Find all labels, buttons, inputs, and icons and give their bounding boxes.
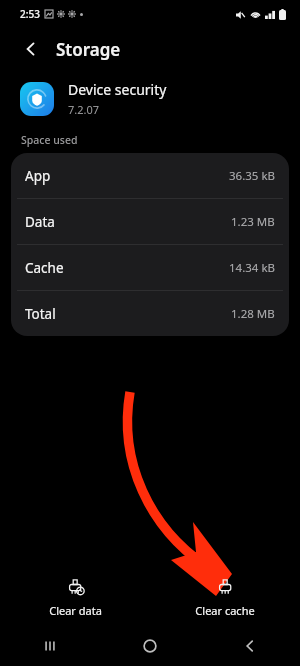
staticText: 7.2.07	[68, 102, 100, 117]
button[interactable]: Total	[11, 291, 289, 336]
staticText: Total	[25, 305, 56, 323]
staticText: Space used	[21, 133, 78, 147]
staticText: Clear cache	[195, 603, 255, 618]
button[interactable]: Back	[200, 626, 300, 666]
staticText: Clear data	[49, 603, 102, 618]
staticText: Cache	[25, 259, 64, 277]
button[interactable]: Clear cache	[150, 570, 300, 626]
staticText: 36.35 kB	[229, 168, 275, 184]
staticText: App	[25, 167, 51, 185]
button[interactable]: Cache	[11, 245, 289, 290]
button[interactable]: Back	[14, 32, 48, 66]
button[interactable]: Data	[11, 199, 289, 244]
button[interactable]: Home	[100, 626, 200, 666]
staticText: Storage	[56, 38, 121, 61]
staticText: 1.28 MB	[231, 306, 275, 322]
staticText: 2:53	[20, 7, 40, 21]
button[interactable]: Recents	[0, 626, 100, 666]
button[interactable]: App	[11, 153, 289, 198]
staticText: 1.23 MB	[231, 214, 275, 230]
button[interactable]: Clear data	[0, 570, 150, 626]
staticText: 14.34 kB	[229, 260, 275, 276]
staticText: Data	[25, 213, 55, 231]
staticText: Device security	[68, 80, 167, 99]
